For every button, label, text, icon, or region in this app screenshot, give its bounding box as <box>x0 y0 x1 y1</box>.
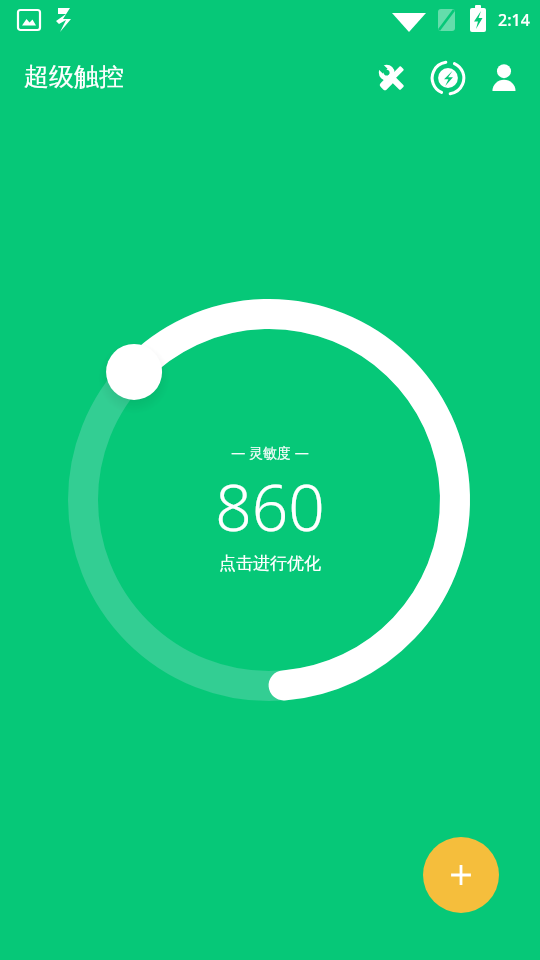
button[interactable]: Account <box>476 50 532 106</box>
button[interactable]: Tools <box>364 50 420 106</box>
staticText: 2:14 <box>498 9 530 31</box>
staticText: — 灵敏度 — <box>231 443 309 462</box>
staticText: 860 <box>215 463 325 550</box>
button[interactable]: — 灵敏度 — <box>0 0 540 960</box>
staticText: 点击进行优化 <box>219 553 321 574</box>
button[interactable]: Boost <box>420 50 476 106</box>
staticText: 超级触控 <box>24 61 124 92</box>
button[interactable]: Add <box>423 837 499 913</box>
